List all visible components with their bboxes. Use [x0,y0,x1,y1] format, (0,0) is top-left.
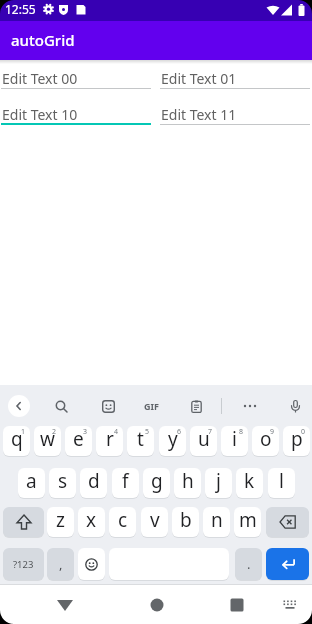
staticText: u [198,426,210,452]
staticText: GIF [144,400,159,412]
button[interactable]: y [159,426,186,456]
button[interactable] [266,548,309,580]
staticText: t [137,426,144,452]
button[interactable]: , [47,548,74,580]
button[interactable] [50,395,72,417]
button[interactable]: k [236,468,263,498]
staticText: g [151,468,163,494]
button[interactable]: q [3,426,30,456]
staticText: c [118,507,128,533]
staticText: 7 [208,427,213,437]
button[interactable]: g [143,468,170,498]
staticText: 12:55 [5,1,36,17]
button[interactable]: h [174,468,201,498]
staticText: p [291,426,303,452]
button[interactable] [278,593,302,617]
button[interactable]: e [65,426,92,456]
button[interactable]: GIF [139,395,163,417]
button[interactable]: i [221,426,248,456]
button[interactable]: f [112,468,139,498]
staticText: e [73,426,84,452]
button[interactable] [3,507,44,537]
button[interactable]: Edit Text 10 [1,100,151,125]
staticText: 5 [145,427,150,437]
button[interactable]: s [49,468,76,498]
staticText: k [244,468,255,494]
button[interactable]: d [80,468,107,498]
staticText: 3 [83,427,88,437]
button[interactable] [239,395,261,417]
staticText: 2 [52,427,57,437]
staticText: x [86,507,97,533]
button[interactable]: x [78,507,105,537]
button[interactable]: j [205,468,232,498]
staticText: , [59,555,63,573]
button[interactable] [185,395,207,417]
staticText: y [168,426,178,452]
button[interactable] [97,395,119,417]
button[interactable]: z [47,507,74,537]
staticText: r [106,426,114,452]
staticText: Edit Text 01 [161,69,237,88]
button[interactable]: . [235,548,262,580]
staticText: z [56,507,65,533]
staticText: Edit Text 11 [161,105,237,124]
button[interactable]: Edit Text 01 [160,64,310,89]
staticText: 4 [114,427,119,437]
staticText: 9 [270,427,275,437]
staticText: n [211,507,223,533]
button[interactable] [284,395,306,417]
staticText: s [58,468,68,494]
staticText: ?123 [13,558,34,571]
button[interactable]: m [234,507,261,537]
button[interactable]: Edit Text 11 [160,100,310,125]
staticText: 1 [21,427,26,437]
staticText: Edit Text 00 [2,69,78,88]
button[interactable]: v [141,507,168,537]
button[interactable]: t [127,426,154,456]
button[interactable]: o [252,426,279,456]
staticText: 0 [301,427,306,437]
staticText: i [232,426,237,452]
staticText: 8 [239,427,244,437]
button[interactable]: n [203,507,230,537]
button[interactable] [78,548,105,580]
staticText: . [247,555,251,573]
staticText: v [150,507,160,533]
staticText: 6 [177,427,182,437]
button[interactable] [145,593,169,617]
staticText: j [216,468,221,494]
staticText: d [88,468,100,494]
staticText: Edit Text 10 [2,105,78,124]
button[interactable]: w [34,426,61,456]
staticText: h [182,468,194,494]
staticText: q [11,426,23,452]
staticText: m [239,507,257,533]
button[interactable]: ?123 [3,548,44,580]
button[interactable]: l [268,468,295,498]
button[interactable]: a [18,468,45,498]
staticText: a [26,468,37,494]
button[interactable]: r [96,426,123,456]
staticText: autoGrid [11,30,75,50]
button[interactable] [53,593,77,617]
staticText: w [40,426,55,452]
button[interactable]: p [283,426,310,456]
staticText: b [180,507,192,533]
button[interactable] [225,593,249,617]
button[interactable]: u [190,426,217,456]
button[interactable] [8,395,30,417]
staticText: l [279,468,284,494]
button[interactable] [266,507,309,537]
staticText: o [260,426,272,452]
button[interactable]: Edit Text 00 [1,64,151,89]
staticText: f [122,468,129,494]
button[interactable]: b [172,507,199,537]
button[interactable]: c [109,507,136,537]
